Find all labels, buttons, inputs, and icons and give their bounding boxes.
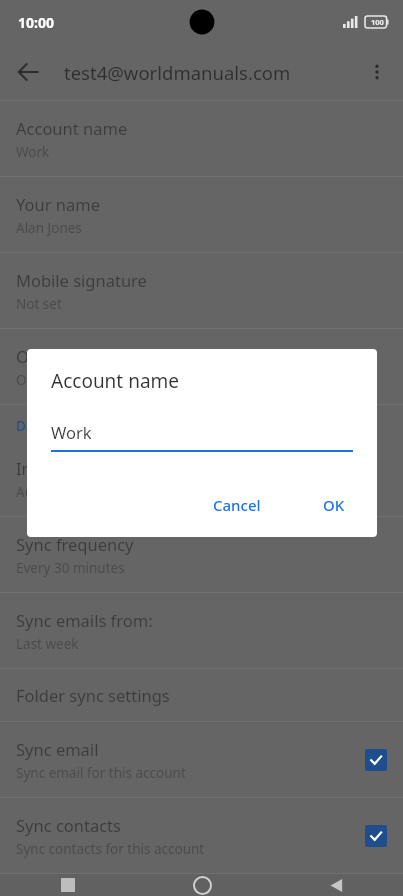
staticText: Sync contacts for this account bbox=[16, 840, 205, 858]
staticText: Work bbox=[16, 143, 50, 161]
staticText: Account name bbox=[16, 117, 128, 139]
button[interactable]: Incoming settings bbox=[0, 441, 403, 517]
staticText: Mobile signature bbox=[16, 269, 147, 291]
staticText: Sync email bbox=[16, 738, 99, 760]
button[interactable]: OK bbox=[313, 487, 355, 523]
staticText: Off bbox=[16, 371, 36, 389]
staticText: Add or edit server settings bbox=[16, 483, 184, 501]
staticText: Sync emails from: bbox=[16, 609, 153, 631]
button[interactable]: Out of Office Auto-Reply bbox=[0, 329, 403, 405]
staticText: Sync email for this account bbox=[16, 764, 186, 782]
staticText: Not set bbox=[16, 295, 62, 313]
staticText: Cancel bbox=[213, 495, 261, 515]
staticText: Work bbox=[51, 421, 92, 443]
button[interactable]: Back bbox=[0, 44, 56, 100]
button[interactable]: Mobile signature bbox=[0, 253, 403, 329]
button[interactable]: More options bbox=[351, 46, 403, 98]
staticText: Account name bbox=[51, 368, 180, 394]
button[interactable]: Folder sync settings bbox=[0, 669, 403, 722]
staticText: Last week bbox=[16, 635, 79, 653]
staticText: 10:00 bbox=[18, 13, 54, 32]
button[interactable]: Account name bbox=[0, 101, 403, 177]
button[interactable]: Recents bbox=[0, 874, 135, 896]
button[interactable]: Home bbox=[135, 874, 269, 896]
button[interactable]: Sync emails from: bbox=[0, 593, 403, 669]
button[interactable]: Sync frequency bbox=[0, 517, 403, 593]
button[interactable]: Cancel bbox=[203, 487, 271, 523]
button[interactable]: Sync email bbox=[0, 722, 403, 798]
staticText: Every 30 minutes bbox=[16, 559, 125, 577]
staticText: Your name bbox=[16, 193, 100, 215]
staticText: Data usage bbox=[16, 417, 89, 435]
staticText: 100 bbox=[371, 17, 384, 27]
staticText: Alan Jones bbox=[16, 219, 82, 237]
button[interactable]: Sync contacts bbox=[0, 798, 403, 874]
staticText: Incoming settings bbox=[16, 457, 156, 479]
staticText: test4@worldmanuals.com bbox=[64, 60, 351, 85]
staticText: Out of Office Auto-Reply bbox=[16, 345, 204, 367]
staticText: Folder sync settings bbox=[16, 684, 170, 706]
button[interactable]: Back bbox=[269, 874, 403, 896]
staticText: Sync frequency bbox=[16, 533, 134, 555]
button[interactable]: Your name bbox=[0, 177, 403, 253]
staticText: OK bbox=[323, 495, 345, 515]
staticText: Sync contacts bbox=[16, 814, 121, 836]
